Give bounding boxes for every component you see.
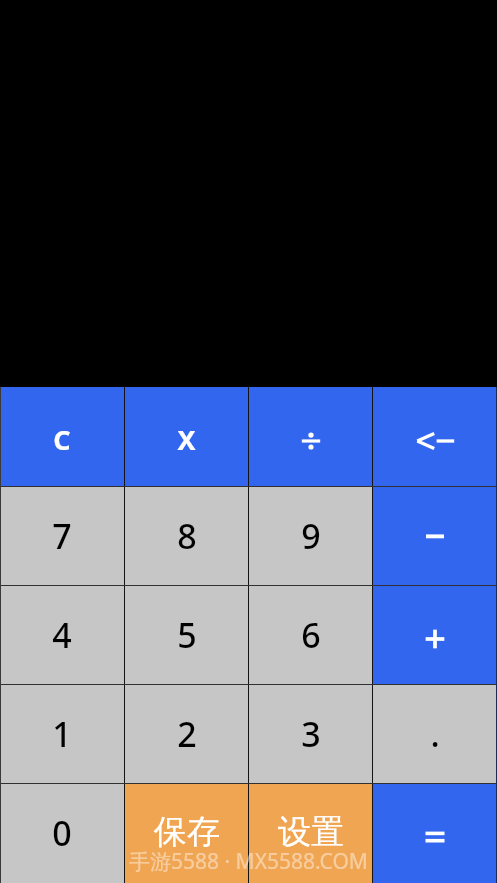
button[interactable]: 3: [249, 685, 372, 783]
button[interactable]: 设置: [249, 784, 372, 883]
button[interactable]: 6: [249, 586, 372, 684]
staticText: 8: [177, 513, 197, 559]
button[interactable]: Equals: [373, 784, 497, 883]
staticText: 保存: [154, 811, 220, 853]
staticText: 6: [301, 612, 321, 658]
staticText: 7: [52, 513, 72, 559]
staticText: C: [53, 421, 71, 458]
staticText: 设置: [278, 811, 344, 853]
button[interactable]: 5: [125, 586, 248, 684]
button[interactable]: 9: [249, 487, 372, 585]
button[interactable]: Divide: [249, 387, 372, 486]
staticText: 2: [177, 711, 197, 757]
staticText: 1: [52, 711, 72, 757]
button[interactable]: Backspace: [373, 387, 497, 486]
staticText: 0: [52, 810, 72, 856]
button[interactable]: X: [125, 387, 248, 486]
staticText: .: [430, 711, 440, 757]
staticText: X: [177, 421, 196, 458]
staticText: 9: [301, 513, 321, 559]
button[interactable]: 7: [0, 487, 124, 585]
staticText: 4: [52, 612, 72, 658]
button[interactable]: 4: [0, 586, 124, 684]
staticText: 3: [301, 711, 321, 757]
staticText: 手游5588 · MX5588.COM: [129, 847, 368, 876]
button[interactable]: Plus: [373, 586, 497, 684]
button[interactable]: C: [0, 387, 124, 486]
button[interactable]: .: [373, 685, 497, 783]
staticText: 5: [177, 612, 197, 658]
button[interactable]: 8: [125, 487, 248, 585]
button[interactable]: 1: [0, 685, 124, 783]
button[interactable]: Minus: [373, 487, 497, 585]
button[interactable]: 0: [0, 784, 124, 883]
button[interactable]: 2: [125, 685, 248, 783]
button[interactable]: 保存: [125, 784, 248, 883]
